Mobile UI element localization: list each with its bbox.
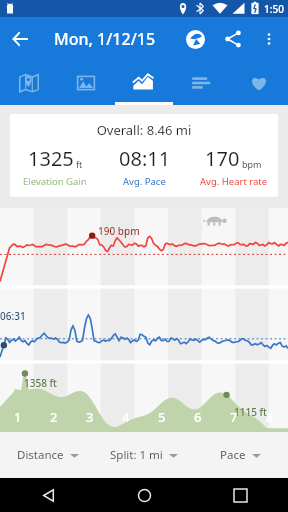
button[interactable]: Charts bbox=[114, 60, 172, 105]
staticText: bpm bbox=[242, 158, 262, 170]
staticText: Pace bbox=[220, 447, 246, 463]
button[interactable]: Map bbox=[0, 60, 57, 105]
staticText: 170 bbox=[205, 145, 240, 172]
staticText: ft bbox=[76, 158, 83, 170]
staticText: Mon, 1/12/15 bbox=[54, 28, 156, 50]
staticText: 190 bpm bbox=[98, 224, 140, 238]
staticText: Avg. Heart rate bbox=[200, 175, 268, 188]
staticText: Split: 1 mi bbox=[110, 447, 163, 463]
staticText: Avg. Pace bbox=[123, 175, 166, 188]
staticText: 1358 ft bbox=[24, 376, 57, 390]
staticText: 1325 bbox=[28, 145, 74, 172]
button[interactable]: Photos bbox=[57, 60, 114, 105]
button[interactable]: Overall: 8.46 mi bbox=[10, 114, 278, 197]
button[interactable]: Back bbox=[0, 19, 40, 59]
staticText: 7 bbox=[230, 408, 238, 426]
staticText: 2 bbox=[50, 408, 58, 426]
staticText: 6 bbox=[194, 408, 202, 426]
staticText: 1115 ft bbox=[234, 405, 267, 419]
staticText: 1 bbox=[14, 408, 22, 426]
staticText: 3 bbox=[86, 408, 94, 426]
button[interactable]: Share bbox=[214, 20, 252, 58]
button[interactable]: Recent apps bbox=[192, 478, 288, 512]
button[interactable]: Splits bbox=[172, 60, 230, 105]
button[interactable]: Home bbox=[96, 478, 192, 512]
button[interactable]: Map view bbox=[176, 20, 214, 58]
staticText: 08:11 bbox=[119, 145, 171, 172]
staticText: 4 bbox=[122, 408, 130, 426]
button[interactable]: Distance bbox=[0, 432, 96, 478]
button[interactable]: More options bbox=[252, 22, 286, 56]
button[interactable]: Heart rate bbox=[230, 60, 288, 105]
button[interactable]: Split: 1 mi bbox=[96, 432, 192, 478]
staticText: Elevation Gain bbox=[23, 175, 87, 188]
staticText: 1:50 bbox=[264, 2, 284, 16]
staticText: Distance bbox=[17, 447, 64, 463]
button[interactable]: Pace bbox=[192, 432, 288, 478]
staticText: 06:31 bbox=[0, 309, 26, 323]
staticText: 5 bbox=[158, 408, 166, 426]
staticText: 8 bbox=[266, 408, 274, 426]
staticText: Overall: 8.46 mi bbox=[10, 121, 278, 139]
button[interactable]: Back bbox=[0, 478, 96, 512]
